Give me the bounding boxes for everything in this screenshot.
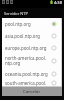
button[interactable]: oceania.pool.ntp.org xyxy=(2,68,62,80)
button[interactable]: Cancelar xyxy=(2,87,62,96)
staticText: Servidor NTP xyxy=(4,11,28,16)
button[interactable]: asia.pool.ntp.org xyxy=(2,30,62,42)
staticText: 4:38 xyxy=(54,0,62,4)
staticText: south-america.pool. ntp.org xyxy=(5,80,50,86)
staticText: asia.pool.ntp.org xyxy=(5,33,50,39)
staticText: oceania.pool.ntp.org xyxy=(5,71,50,77)
button[interactable]: north-america.pool. ntp.org xyxy=(2,54,62,68)
staticText: europe.pool.ntp.org xyxy=(5,45,50,51)
staticText: Cancelar xyxy=(23,89,41,95)
button[interactable]: south-america.pool. ntp.org xyxy=(2,80,62,86)
other: Battery xyxy=(50,0,53,4)
staticText: north-america.pool. ntp.org xyxy=(5,55,50,67)
button[interactable]: pool.ntp.org xyxy=(2,18,62,30)
staticText: pool.ntp.org xyxy=(5,21,50,27)
button[interactable]: europe.pool.ntp.org xyxy=(2,42,62,54)
